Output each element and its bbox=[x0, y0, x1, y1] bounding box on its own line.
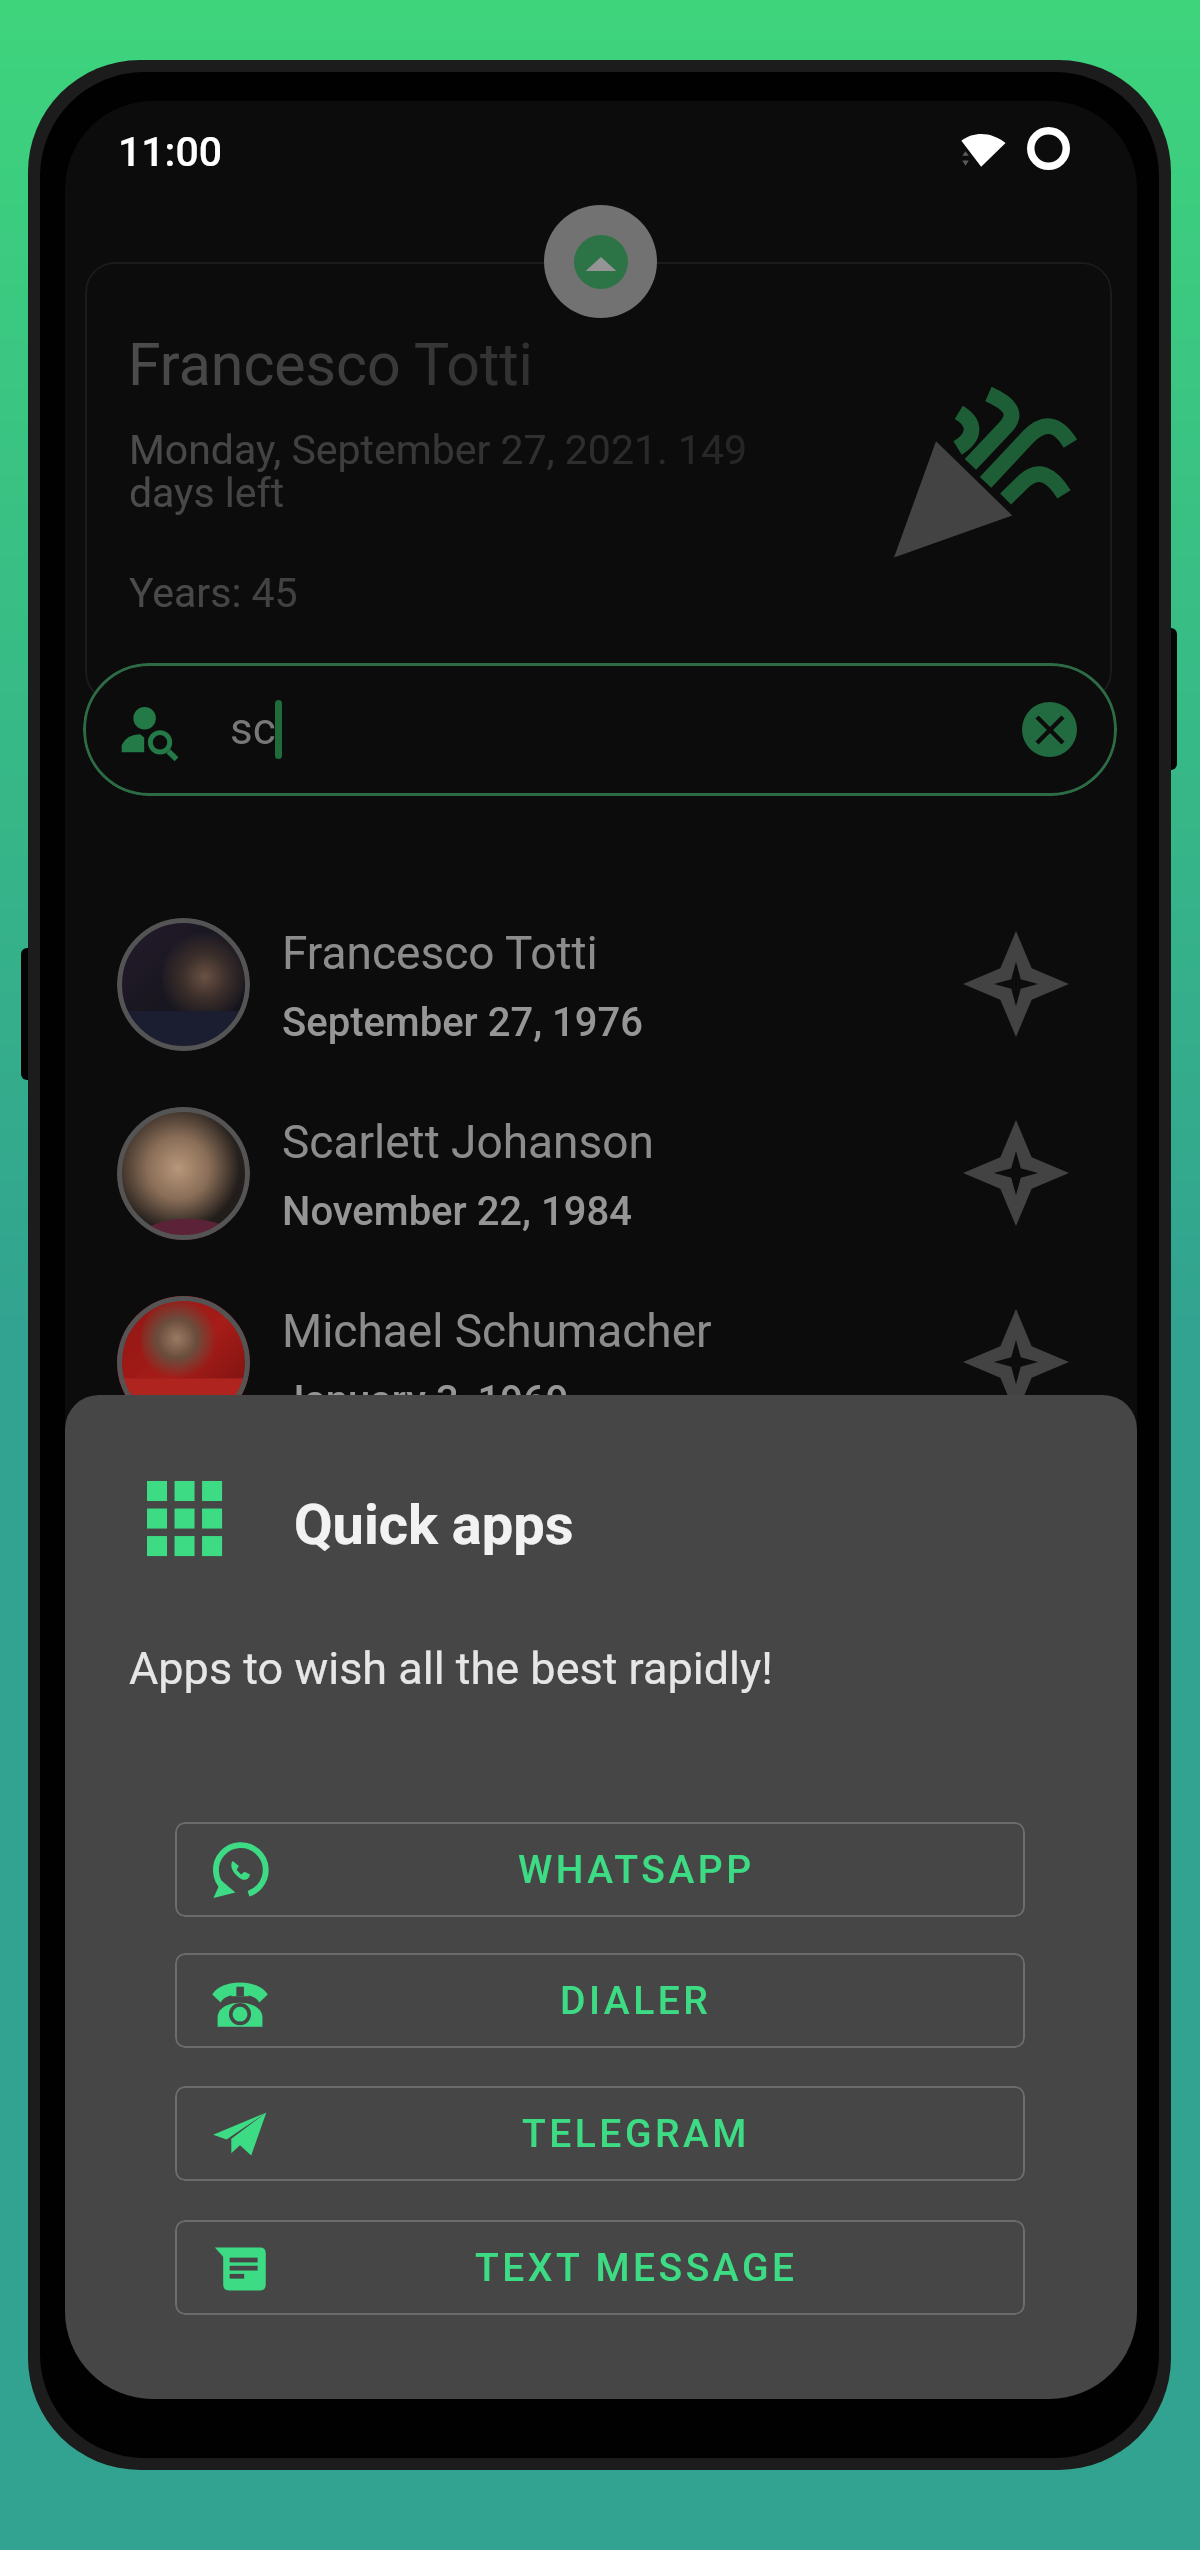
staticText: WHATSAPP bbox=[518, 1847, 755, 1893]
staticText: January 3, 1969 bbox=[282, 1377, 569, 1424]
staticText: Apps to wish all the best rapidly! bbox=[129, 1642, 773, 1695]
staticText: DIALER bbox=[560, 1978, 712, 2024]
button[interactable]: DIALER bbox=[175, 1953, 1025, 2048]
button[interactable]: WHATSAPP bbox=[175, 1822, 1025, 1917]
button[interactable]: Collapse bbox=[544, 205, 657, 318]
staticText: Francesco Totti bbox=[128, 330, 533, 399]
button[interactable]: Michael Schumacher bbox=[65, 1268, 1137, 1457]
staticText: Quick apps bbox=[294, 1492, 574, 1558]
button[interactable]: sc bbox=[83, 663, 1117, 796]
staticText: Scarlett Johanson bbox=[282, 1115, 654, 1169]
staticText: Years: 45 bbox=[129, 569, 298, 617]
button[interactable]: TELEGRAM bbox=[175, 2086, 1025, 2181]
staticText: Francesco Totti bbox=[282, 926, 598, 980]
staticText: TELEGRAM bbox=[522, 2111, 750, 2157]
staticText: Monday, September 27, 2021. 149 days lef… bbox=[129, 426, 748, 517]
button[interactable]: Francesco Totti bbox=[65, 890, 1137, 1079]
button[interactable]: Clear search bbox=[1022, 702, 1077, 757]
staticText: sc bbox=[230, 703, 276, 755]
staticText: TEXT MESSAGE bbox=[475, 2245, 798, 2291]
staticText: Michael Schumacher bbox=[282, 1304, 712, 1358]
staticText: September 27, 1976 bbox=[282, 999, 643, 1046]
staticText: November 22, 1984 bbox=[282, 1188, 632, 1235]
button[interactable]: TEXT MESSAGE bbox=[175, 2220, 1025, 2315]
staticText: 11:00 bbox=[118, 128, 223, 176]
button[interactable]: Scarlett Johanson bbox=[65, 1079, 1137, 1268]
